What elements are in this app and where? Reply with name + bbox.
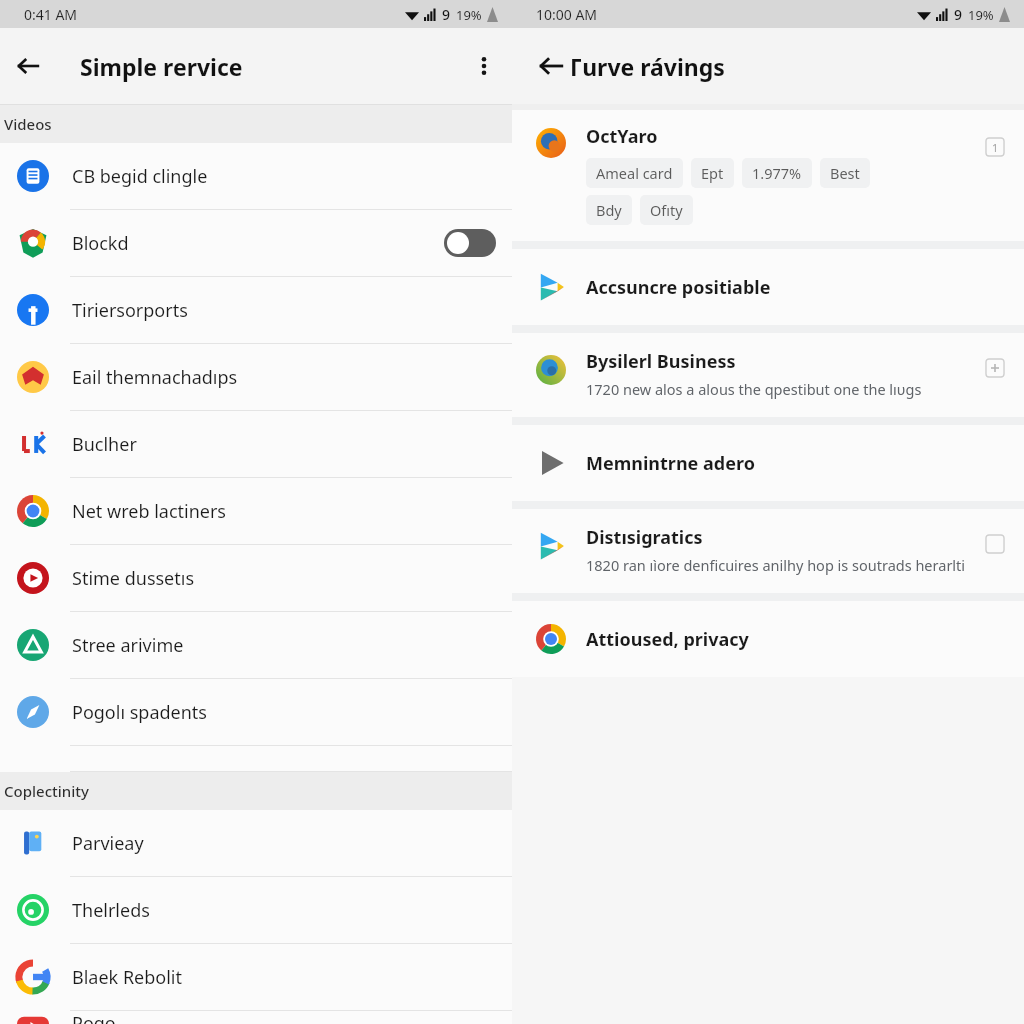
button[interactable]: Eail themnachadıps	[0, 344, 512, 411]
staticText: Parvieay	[72, 831, 496, 856]
staticText: Bdy	[596, 200, 622, 220]
button[interactable]: Distısigratics	[512, 509, 1024, 593]
button[interactable]: Attioused, privacy	[512, 601, 1024, 677]
staticText: Blaek Rebolit	[72, 965, 496, 990]
staticText: 1820 ran ıìore denficuires anilhy hop is…	[586, 555, 966, 575]
button[interactable]: Stree arivime	[0, 612, 512, 679]
staticText: Videos	[4, 114, 52, 134]
button[interactable]: Best	[820, 158, 870, 188]
button[interactable]: Back	[0, 38, 56, 94]
button[interactable]: Info	[984, 136, 1006, 158]
button[interactable]: Ept	[691, 158, 734, 188]
staticText: Tiriersorports	[72, 298, 496, 323]
button[interactable]: Thelrleds	[0, 877, 512, 944]
button[interactable]: Pogolı spadents	[0, 679, 512, 746]
staticText: Γurve rávings	[570, 51, 725, 82]
button[interactable]: Net wreb lactiners	[0, 478, 512, 545]
staticText: Coplectinity	[4, 781, 89, 801]
staticText: Stime dussetıs	[72, 566, 496, 591]
button[interactable]: More options	[456, 38, 512, 94]
staticText: Stree arivime	[72, 633, 496, 658]
button[interactable]: OctYaro	[512, 110, 1024, 241]
button[interactable]: Stime dussetıs	[0, 545, 512, 612]
staticText: Memnintrne adero	[586, 451, 755, 476]
staticText: 19%	[456, 6, 482, 24]
staticText: 1.977%	[752, 163, 802, 183]
button[interactable]: Blaek Rebolit	[0, 944, 512, 1011]
staticText: Best	[830, 163, 860, 183]
button[interactable]: Pogo...	[0, 1011, 512, 1024]
staticText: OctYaro	[586, 124, 658, 149]
staticText: 0:41 AM	[24, 5, 78, 24]
button[interactable]: Bysilerl Business	[512, 333, 1024, 417]
button[interactable]: Memnintrne adero	[512, 425, 1024, 501]
staticText: Ameal card	[596, 163, 673, 183]
staticText: Ofıty	[650, 200, 683, 220]
button[interactable]: Ofıty	[640, 195, 693, 225]
button[interactable]: Buclher	[0, 411, 512, 478]
button[interactable]: 1.977%	[742, 158, 812, 188]
staticText: 9	[954, 5, 963, 24]
staticText: 1	[992, 140, 999, 155]
staticText: Attioused, privacy	[586, 627, 749, 652]
staticText: 1720 new alos a alous the qpestibut one …	[586, 379, 922, 399]
button[interactable]: Open	[984, 533, 1006, 555]
staticText: Pogolı spadents	[72, 700, 496, 725]
staticText: Net wreb lactiners	[72, 499, 496, 524]
staticText: Simple rervice	[80, 51, 243, 82]
button[interactable]: Parvieay	[0, 810, 512, 877]
staticText: Thelrleds	[72, 898, 496, 923]
staticText: Eail themnachadıps	[72, 365, 496, 390]
staticText: Distısigratics	[586, 525, 703, 550]
staticText: 19%	[968, 6, 994, 24]
staticText: Bysilerl Business	[586, 349, 736, 374]
button[interactable]: Tiriersorports	[0, 277, 512, 344]
staticText: Accsuncre positiable	[586, 275, 771, 300]
staticText: 10:00 AM	[536, 5, 598, 24]
staticText: Pogo...	[72, 1011, 496, 1024]
staticText: Buclher	[72, 432, 496, 457]
staticText: 9	[442, 5, 451, 24]
staticText: Ept	[701, 163, 724, 183]
button[interactable]: Blockd	[0, 210, 512, 277]
button[interactable]: CB begid clingle	[0, 143, 512, 210]
staticText: Blockd	[72, 231, 444, 256]
button[interactable]: Back	[534, 49, 568, 83]
button[interactable]: Add	[984, 357, 1006, 379]
button[interactable]: Accsuncre positiable	[512, 249, 1024, 325]
button[interactable]: Ameal card	[586, 158, 683, 188]
button[interactable]: Toggle	[444, 229, 496, 257]
staticText: CB begid clingle	[72, 164, 496, 189]
button[interactable]: Bdy	[586, 195, 632, 225]
